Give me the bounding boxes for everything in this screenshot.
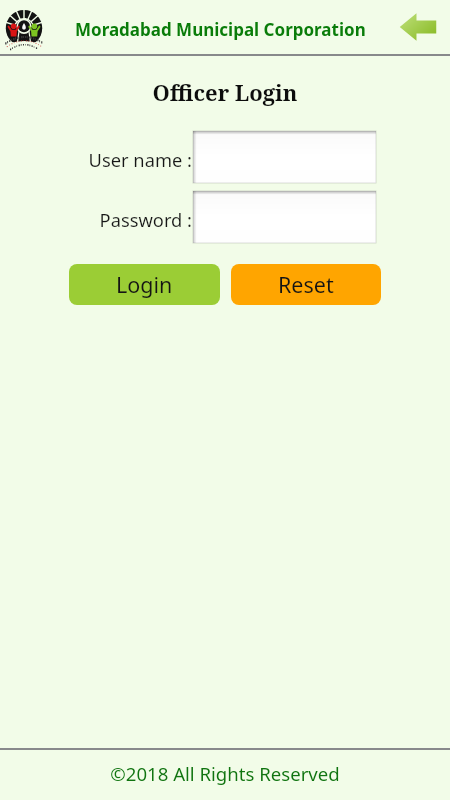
button[interactable] xyxy=(193,191,376,243)
button[interactable] xyxy=(193,131,376,183)
button[interactable]: Reset xyxy=(231,264,381,305)
staticText: Password : xyxy=(0,207,192,232)
button[interactable]: Back xyxy=(399,11,437,43)
staticText: ©2018 All Rights Reserved xyxy=(0,761,450,786)
button[interactable]: Login xyxy=(69,264,220,305)
staticText: User name : xyxy=(0,147,192,172)
staticText: Reset xyxy=(278,270,334,299)
staticText: Officer Login xyxy=(0,77,450,107)
staticText: Login xyxy=(116,270,173,299)
staticText: Moradabad Municipal Corporation xyxy=(75,18,366,41)
